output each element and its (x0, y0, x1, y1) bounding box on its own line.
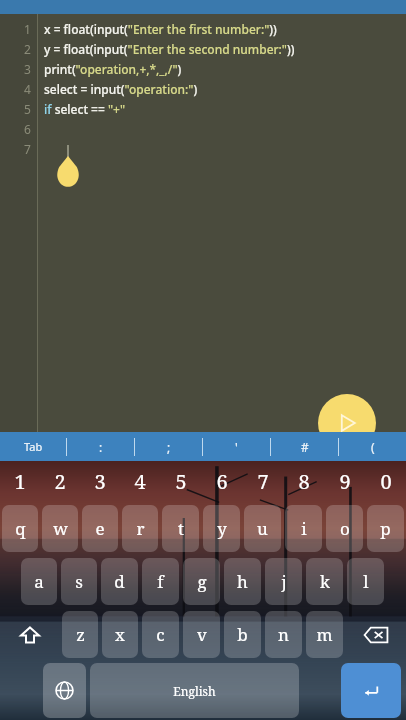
button[interactable]: 3 (80, 461, 120, 502)
button[interactable]: ' (203, 432, 270, 461)
staticText: d (114, 570, 125, 593)
staticText: 1 (24, 21, 31, 37)
button[interactable]: # (271, 432, 338, 461)
button[interactable]: t (162, 505, 199, 552)
staticText: 1 (14, 468, 26, 495)
staticText: h (237, 570, 248, 593)
staticText: 8 (298, 468, 310, 495)
staticText: print("operation,+,*,_,/") (44, 61, 182, 77)
button[interactable]: 8 (283, 461, 324, 502)
staticText: f (157, 570, 164, 593)
staticText: 9 (339, 468, 351, 495)
staticText: ; (167, 439, 171, 455)
button[interactable]: Backspace (345, 608, 406, 661)
button[interactable]: l (347, 558, 384, 605)
staticText: c (156, 623, 165, 646)
staticText: q (15, 517, 26, 540)
button[interactable]: c (142, 611, 179, 658)
staticText: u (257, 517, 268, 540)
button[interactable]: z (62, 611, 98, 658)
staticText: 3 (94, 468, 106, 495)
staticText: 6 (216, 468, 228, 495)
button[interactable]: English (90, 663, 299, 718)
staticText: p (380, 517, 391, 540)
button[interactable]: x (102, 611, 138, 658)
button[interactable]: b (224, 611, 261, 658)
staticText: z (76, 623, 85, 646)
staticText: 4 (24, 81, 31, 97)
button[interactable]: j (265, 558, 302, 605)
button[interactable]: 2 (40, 461, 80, 502)
button[interactable]: 0 (365, 461, 406, 502)
button[interactable]: f (142, 558, 179, 605)
button[interactable]: k (306, 558, 343, 605)
staticText: w (53, 517, 68, 540)
staticText: k (320, 570, 330, 593)
button[interactable]: r (122, 505, 158, 552)
staticText: ( (371, 439, 375, 455)
staticText: 2 (24, 41, 31, 57)
button[interactable]: w (42, 505, 78, 552)
staticText: a (34, 570, 44, 593)
staticText: English (173, 683, 216, 699)
button[interactable]: Run (318, 394, 376, 452)
staticText: o (340, 517, 350, 540)
staticText: e (95, 517, 105, 540)
button[interactable]: : (67, 432, 134, 461)
staticText: s (75, 570, 83, 593)
button[interactable]: Tab (0, 432, 66, 461)
button[interactable]: d (101, 558, 138, 605)
staticText: v (197, 623, 207, 646)
staticText: : (99, 439, 103, 455)
staticText: 3 (24, 61, 31, 77)
button[interactable]: e (82, 505, 118, 552)
staticText: r (136, 517, 145, 540)
button[interactable]: i (285, 505, 322, 552)
staticText: g (197, 570, 207, 593)
button[interactable]: Enter (341, 663, 401, 718)
button[interactable]: Shift (0, 608, 60, 661)
staticText: l (363, 570, 369, 593)
staticText: 4 (134, 468, 146, 495)
staticText: y (217, 517, 227, 540)
button[interactable]: 4 (120, 461, 160, 502)
button[interactable]: v (183, 611, 220, 658)
button[interactable]: 7 (242, 461, 283, 502)
staticText: t (178, 517, 184, 540)
staticText: Tab (24, 439, 43, 454)
button[interactable]: y (203, 505, 240, 552)
button[interactable]: 9 (324, 461, 365, 502)
staticText: x = float(input("Enter the first number:… (44, 21, 277, 37)
button[interactable]: ; (135, 432, 202, 461)
button[interactable]: 5 (160, 461, 201, 502)
button[interactable]: n (265, 611, 302, 658)
staticText: x (115, 623, 125, 646)
staticText: b (237, 623, 248, 646)
button[interactable]: g (183, 558, 220, 605)
button[interactable]: u (244, 505, 281, 552)
staticText: if select == "+" (44, 101, 126, 117)
staticText: n (278, 623, 289, 646)
button[interactable]: h (224, 558, 261, 605)
staticText: 7 (257, 468, 269, 495)
button[interactable]: a (21, 558, 57, 605)
staticText: 7 (24, 141, 31, 157)
button[interactable]: Change language (43, 663, 86, 718)
staticText: 5 (24, 101, 31, 117)
button[interactable]: 1 (0, 461, 40, 502)
staticText: y = float(input("Enter the second number… (44, 41, 295, 57)
button[interactable]: p (367, 505, 404, 552)
staticText: i (301, 517, 307, 540)
button[interactable]: s (61, 558, 97, 605)
staticText: 6 (24, 121, 31, 137)
staticText: m (316, 623, 333, 646)
staticText: # (301, 439, 309, 455)
button[interactable]: m (306, 611, 343, 658)
staticText: ' (235, 439, 238, 455)
button[interactable]: ( (339, 432, 406, 461)
staticText: 0 (380, 468, 392, 495)
staticText: select = input("operation:") (44, 81, 198, 97)
button[interactable]: q (2, 505, 38, 552)
button[interactable]: 6 (201, 461, 242, 502)
button[interactable]: o (326, 505, 363, 552)
